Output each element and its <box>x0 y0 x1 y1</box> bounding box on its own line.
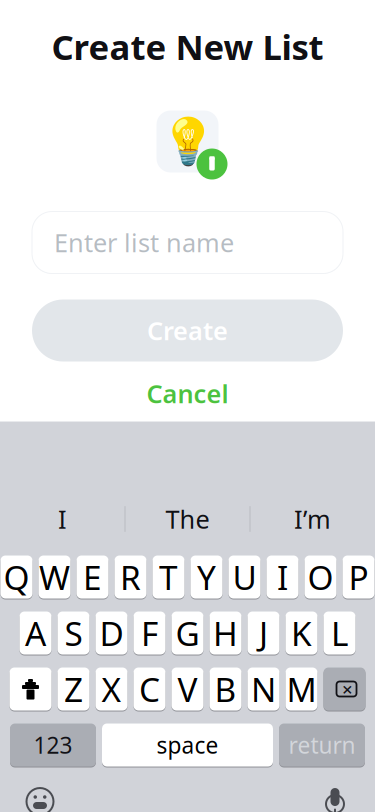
staticText: Cancel <box>146 377 228 410</box>
button[interactable]: F <box>133 610 165 655</box>
button[interactable]: H <box>209 610 241 655</box>
staticText: Y <box>197 555 216 599</box>
button[interactable]: R <box>114 554 146 599</box>
staticText: R <box>120 555 141 599</box>
button[interactable]: I <box>0 492 124 545</box>
staticText: N <box>251 667 276 711</box>
button[interactable]: Emoji keyboard <box>14 781 66 812</box>
button[interactable]: E <box>76 554 108 599</box>
button[interactable]: L <box>323 610 355 655</box>
staticText: I <box>277 555 288 599</box>
staticText: space <box>156 730 218 760</box>
staticText: A <box>25 611 46 655</box>
button[interactable]: N <box>247 666 279 711</box>
button[interactable]: Create <box>32 299 343 361</box>
staticText: return <box>288 730 355 760</box>
button[interactable]: Q <box>0 554 32 599</box>
button[interactable]: A <box>19 610 51 655</box>
staticText: C <box>139 667 160 711</box>
staticText: X <box>101 667 121 711</box>
button[interactable]: Cancel <box>87 373 287 413</box>
staticText: Z <box>64 667 83 711</box>
staticText: K <box>291 611 312 655</box>
staticText: H <box>213 611 238 655</box>
button[interactable]: 123 <box>10 722 96 767</box>
button[interactable]: D <box>95 610 127 655</box>
button[interactable]: O <box>304 554 336 599</box>
button[interactable]: Shift <box>9 666 51 711</box>
button[interactable]: P <box>342 554 374 599</box>
staticText: 123 <box>33 730 72 760</box>
staticText: W <box>39 555 70 599</box>
button[interactable]: M <box>285 666 317 711</box>
staticText: O <box>307 555 333 599</box>
button[interactable]: J <box>247 610 279 655</box>
staticText: L <box>331 611 348 655</box>
button[interactable]: X <box>95 666 127 711</box>
staticText: F <box>141 611 158 655</box>
staticText: P <box>348 555 368 599</box>
staticText: J <box>259 611 268 655</box>
button[interactable]: B <box>209 666 241 711</box>
staticText: Q <box>3 555 29 599</box>
button[interactable]: I <box>266 554 298 599</box>
button[interactable]: G <box>171 610 203 655</box>
button[interactable]: Dictation <box>309 781 361 812</box>
button[interactable]: Change list icon <box>147 103 227 179</box>
button[interactable]: The <box>125 492 249 545</box>
staticText: U <box>232 555 256 599</box>
staticText: Enter list name <box>54 226 234 259</box>
button[interactable]: W <box>38 554 70 599</box>
staticText: V <box>177 667 197 711</box>
staticText: G <box>175 611 199 655</box>
button[interactable]: V <box>171 666 203 711</box>
button[interactable]: return <box>279 722 365 767</box>
staticText: D <box>99 611 123 655</box>
staticText: Create New List <box>51 23 323 69</box>
button[interactable]: S <box>57 610 89 655</box>
staticText: 💡 <box>159 116 215 167</box>
button[interactable]: Enter list name <box>32 211 343 273</box>
button[interactable]: C <box>133 666 165 711</box>
button[interactable]: T <box>152 554 184 599</box>
button[interactable]: I’m <box>250 492 374 545</box>
staticText: E <box>83 555 102 599</box>
staticText: I’m <box>294 502 331 536</box>
staticText: I <box>58 502 67 536</box>
staticText: S <box>64 611 82 655</box>
staticText: × <box>342 677 353 701</box>
button[interactable]: K <box>285 610 317 655</box>
button[interactable]: Z <box>57 666 89 711</box>
button[interactable]: U <box>228 554 260 599</box>
button[interactable]: Delete <box>323 666 365 711</box>
staticText: Create <box>147 314 228 347</box>
staticText: M <box>286 667 316 711</box>
staticText: The <box>165 502 209 536</box>
staticText: B <box>214 667 236 711</box>
staticText: T <box>159 555 178 599</box>
button[interactable]: Y <box>190 554 222 599</box>
button[interactable]: space <box>102 722 273 767</box>
